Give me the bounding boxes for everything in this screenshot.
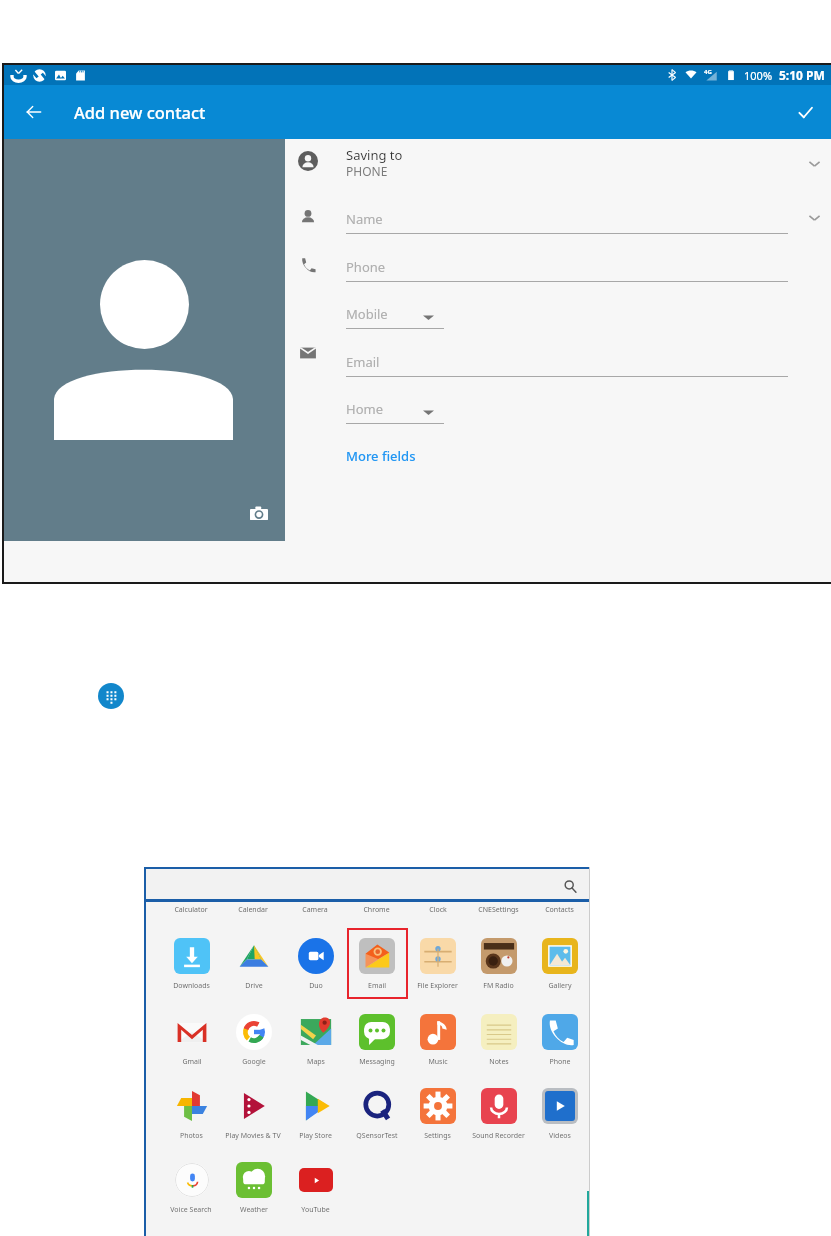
staticText: Downloads	[173, 981, 210, 991]
button[interactable]: Settings	[419, 1087, 456, 1141]
staticText: Email	[368, 981, 386, 991]
staticText: Weather	[240, 1205, 268, 1215]
staticText: Email	[346, 353, 380, 371]
button[interactable]: Back	[15, 93, 53, 131]
button[interactable]: Save	[785, 92, 825, 132]
button[interactable]: Drive	[235, 937, 272, 991]
staticText: Videos	[549, 1131, 571, 1141]
staticText: 4G	[704, 68, 712, 76]
staticText: Phone	[346, 258, 386, 276]
button[interactable]: Change account	[803, 152, 825, 174]
button[interactable]: Videos	[541, 1087, 578, 1141]
button[interactable]: FM Radio	[480, 937, 517, 991]
button[interactable]: Weather	[235, 1161, 272, 1215]
button[interactable]: Home	[346, 400, 444, 424]
staticText: QSensorTest	[356, 1131, 398, 1141]
staticText: Sound Recorder	[472, 1131, 525, 1141]
button[interactable]: Gallery	[541, 937, 578, 991]
staticText: FM Radio	[483, 981, 514, 991]
staticText: Notes	[489, 1057, 509, 1067]
staticText: Voice Search	[170, 1205, 212, 1215]
staticText: Camera	[302, 905, 328, 915]
staticText: Gmail	[182, 1057, 202, 1067]
button[interactable]: Play Store	[297, 1087, 334, 1141]
staticText: Add new contact	[74, 101, 206, 123]
button[interactable]: Search	[144, 869, 590, 901]
staticText: Duo	[309, 981, 323, 991]
staticText: Photos	[180, 1131, 203, 1141]
button[interactable]: Voice Search	[170, 1161, 212, 1215]
staticText: Name	[346, 210, 383, 228]
button[interactable]: Music	[419, 1013, 456, 1067]
staticText: Messaging	[359, 1057, 395, 1067]
button[interactable]: Messaging	[358, 1013, 395, 1067]
staticText: Play Movies & TV	[225, 1131, 281, 1141]
staticText: CNESettings	[478, 905, 519, 915]
staticText: 100%	[744, 68, 773, 83]
staticText: Contacts	[545, 905, 574, 915]
button[interactable]: Email	[358, 937, 395, 991]
button[interactable]: More fields	[342, 444, 420, 468]
button[interactable]: Duo	[297, 937, 334, 991]
staticText: YouTube	[301, 1205, 330, 1215]
button[interactable]: Gmail	[173, 1013, 210, 1067]
staticText: Drive	[245, 981, 263, 991]
button[interactable]: Saving to	[285, 139, 831, 186]
button[interactable]: Play Movies & TV	[225, 1087, 281, 1141]
button[interactable]: File Explorer	[417, 937, 458, 991]
button[interactable]: Sound Recorder	[472, 1087, 525, 1141]
button[interactable]: Expand name	[803, 206, 825, 228]
button[interactable]: Mobile	[346, 305, 444, 329]
staticText: Music	[428, 1057, 448, 1067]
button[interactable]: Notes	[480, 1013, 517, 1067]
button[interactable]: Search	[560, 876, 580, 896]
staticText: Phone	[549, 1057, 571, 1067]
staticText: More fields	[346, 447, 416, 465]
staticText: 5:10 PM	[779, 67, 825, 83]
button[interactable]: YouTube	[297, 1161, 334, 1215]
staticText: Clock	[429, 905, 447, 915]
button[interactable]: Name	[346, 210, 788, 234]
staticText: Gallery	[548, 981, 572, 991]
staticText: Calculator	[174, 905, 208, 915]
staticText: Settings	[424, 1131, 451, 1141]
button[interactable]: QSensorTest	[356, 1087, 398, 1141]
staticText: PHONE	[346, 163, 388, 179]
staticText: File Explorer	[417, 981, 458, 991]
button[interactable]: Phone	[541, 1013, 578, 1067]
staticText: Saving to	[346, 146, 403, 164]
staticText: Play Store	[299, 1131, 332, 1141]
button[interactable]: Dialpad	[98, 683, 124, 709]
staticText: Mobile	[346, 305, 388, 323]
button[interactable]: Photos	[173, 1087, 210, 1141]
button[interactable]: Downloads	[173, 937, 210, 991]
button[interactable]: Phone	[346, 258, 788, 282]
staticText: Maps	[307, 1057, 325, 1067]
staticText: Calendar	[238, 905, 268, 915]
button[interactable]: Maps	[297, 1013, 334, 1067]
staticText: Google	[242, 1057, 266, 1067]
button[interactable]: Take photo	[247, 502, 271, 526]
staticText: Chrome	[363, 905, 390, 915]
staticText: Home	[346, 400, 383, 418]
button[interactable]: Email	[346, 353, 788, 377]
button[interactable]: Google	[235, 1013, 272, 1067]
